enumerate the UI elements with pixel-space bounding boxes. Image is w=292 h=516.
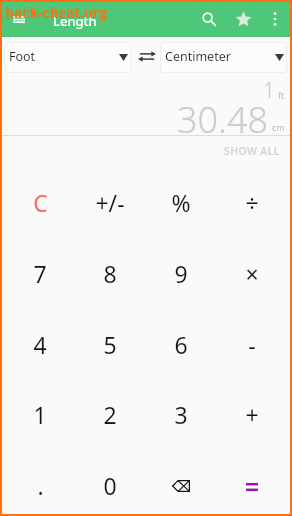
staticText: +/- [95, 187, 125, 218]
button[interactable]: 2 [75, 379, 145, 450]
staticText: 8 [103, 258, 117, 289]
staticText: 30.48 [177, 95, 269, 144]
button[interactable]: × [216, 238, 287, 309]
button[interactable]: SHOW ALL [224, 144, 280, 158]
button[interactable]: 1 [5, 379, 75, 450]
button[interactable]: Search [197, 0, 221, 37]
button[interactable]: 0 [75, 450, 145, 516]
button[interactable]: 9 [145, 238, 216, 309]
staticText: . [37, 470, 44, 501]
staticText: Centimeter [165, 48, 231, 65]
staticText: Length [53, 12, 97, 30]
button[interactable]: 5 [75, 309, 145, 380]
staticText: % [171, 187, 191, 218]
staticText: 2 [103, 399, 117, 430]
staticText: × [245, 258, 259, 289]
button[interactable]: Favorite [231, 0, 255, 37]
staticText: cm [272, 121, 285, 133]
button[interactable]: Foot [4, 42, 131, 73]
button[interactable]: +/- [75, 167, 145, 238]
button[interactable]: Menu [10, 11, 28, 29]
staticText: Foot [9, 48, 36, 65]
other: Equals [246, 483, 258, 491]
staticText: 3 [174, 399, 188, 430]
staticText: 5 [103, 329, 117, 360]
staticText: 9 [174, 258, 188, 289]
button[interactable]: % [145, 167, 216, 238]
staticText: 0 [103, 470, 117, 501]
button[interactable]: + [216, 379, 287, 450]
button[interactable]: Swap units [134, 37, 158, 73]
staticText: ÷ [245, 187, 259, 218]
staticText: 7 [33, 258, 47, 289]
button[interactable]: 4 [5, 309, 75, 380]
button[interactable]: 6 [145, 309, 216, 380]
staticText: 6 [174, 329, 188, 360]
staticText: - [248, 329, 256, 360]
button[interactable]: C [5, 167, 75, 238]
button[interactable]: Backspace [145, 450, 216, 516]
button[interactable]: Centimeter [160, 42, 287, 73]
button[interactable]: 3 [145, 379, 216, 450]
button[interactable]: 8 [75, 238, 145, 309]
button[interactable]: . [5, 450, 75, 516]
staticText: 1 [33, 399, 47, 430]
other: Backspace [172, 480, 190, 492]
staticText: C [33, 187, 48, 218]
button[interactable]: - [216, 309, 287, 380]
button[interactable]: Equals [216, 450, 287, 516]
staticText: hack-cheat.org [5, 3, 107, 22]
staticText: 1 [263, 76, 275, 105]
staticText: 4 [33, 329, 47, 360]
button[interactable]: 7 [5, 238, 75, 309]
staticText: ft [278, 89, 285, 101]
button[interactable]: ÷ [216, 167, 287, 238]
staticText: + [245, 399, 259, 430]
button[interactable]: More options [264, 0, 286, 37]
